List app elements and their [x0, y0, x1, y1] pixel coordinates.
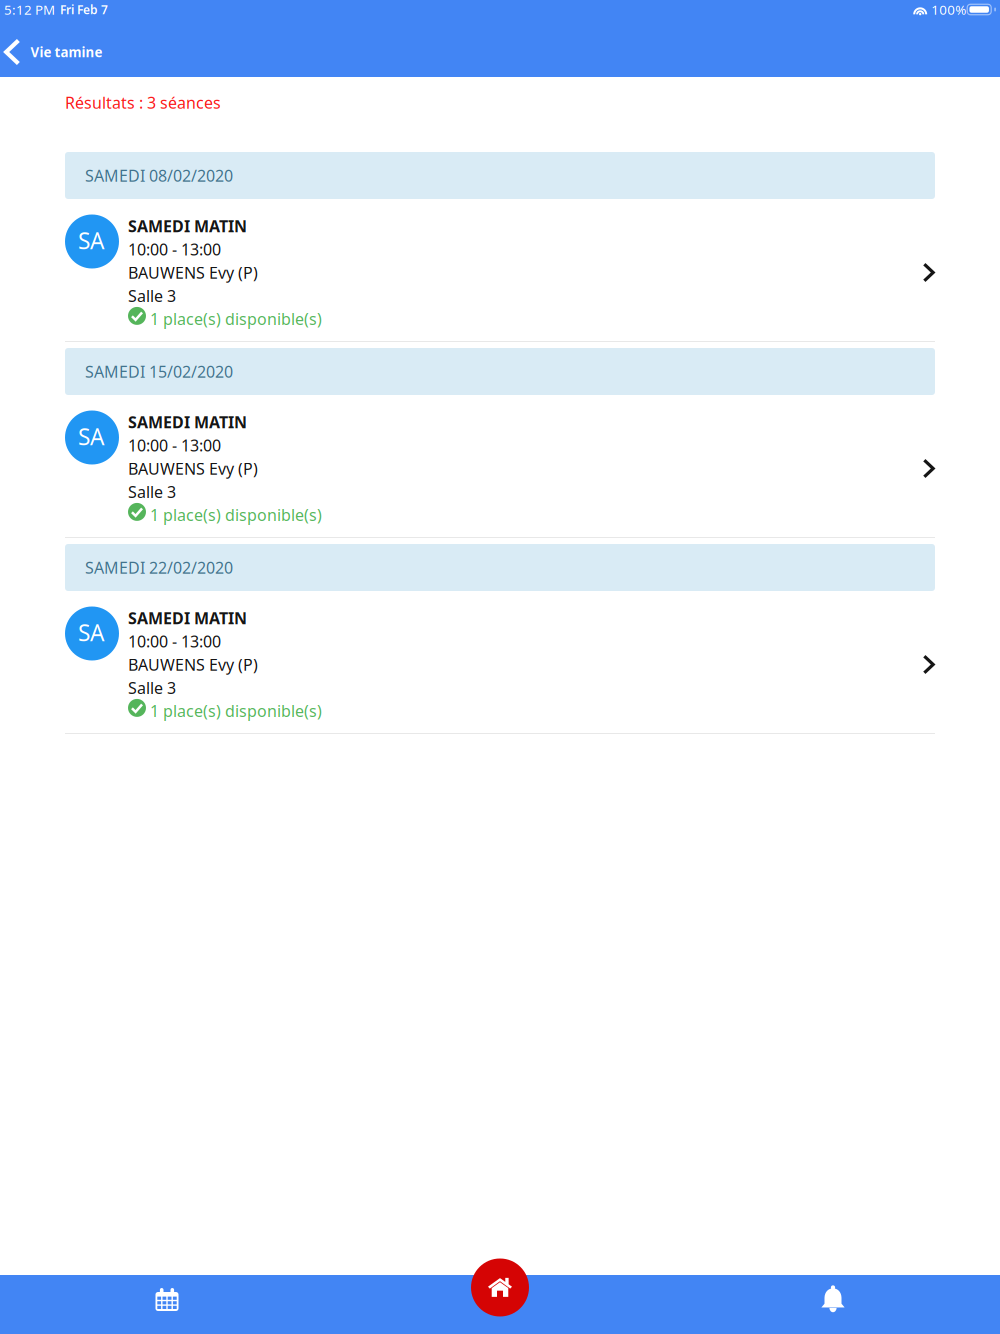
staticText: 1 place(s) disponible(s)	[150, 308, 322, 329]
button[interactable]: SA	[65, 591, 935, 734]
staticText: SAMEDI MATIN	[128, 411, 247, 433]
button[interactable]: SA	[65, 395, 935, 538]
button[interactable]: SA	[65, 199, 935, 342]
staticText: Salle 3	[128, 677, 176, 698]
staticText: Fri Feb 7	[60, 1, 108, 17]
staticText: 100%	[931, 1, 966, 18]
staticText: SAMEDI 22/02/2020	[85, 557, 233, 578]
staticText: SA	[78, 225, 104, 255]
staticText: 10:00 - 13:00	[128, 631, 221, 652]
staticText: BAUWENS Evy (P)	[128, 654, 258, 675]
button[interactable]: Notifications	[778, 1275, 888, 1334]
staticText: 10:00 - 13:00	[128, 435, 221, 456]
staticText: 1 place(s) disponible(s)	[150, 504, 322, 525]
staticText: Vie tamine	[30, 43, 102, 61]
staticText: SA	[78, 421, 104, 451]
staticText: SAMEDI 15/02/2020	[85, 361, 233, 382]
button[interactable]: Vie tamine	[0, 19, 200, 77]
staticText: SAMEDI 08/02/2020	[85, 165, 233, 186]
staticText: 1 place(s) disponible(s)	[150, 700, 322, 721]
staticText: Résultats : 3 séances	[65, 92, 221, 113]
staticText: SAMEDI MATIN	[128, 215, 247, 237]
button[interactable]: Calendrier	[112, 1275, 222, 1334]
staticText: 5:12 PM	[4, 1, 55, 18]
staticText: Salle 3	[128, 285, 176, 306]
button[interactable]: Accueil	[471, 1258, 529, 1316]
staticText: 10:00 - 13:00	[128, 239, 221, 260]
staticText: BAUWENS Evy (P)	[128, 262, 258, 283]
staticText: SA	[78, 617, 104, 647]
staticText: BAUWENS Evy (P)	[128, 458, 258, 479]
staticText: SAMEDI MATIN	[128, 607, 247, 629]
staticText: Salle 3	[128, 481, 176, 502]
